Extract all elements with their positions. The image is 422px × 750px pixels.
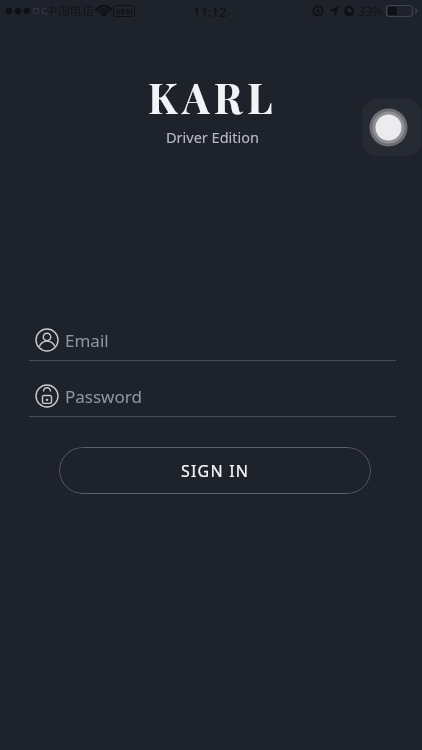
staticText: KARL bbox=[148, 70, 278, 125]
staticText: 11:12 bbox=[193, 3, 227, 21]
staticText: 33% bbox=[358, 3, 383, 20]
staticText: SIGN IN bbox=[181, 460, 250, 482]
button[interactable]: Password bbox=[28, 377, 396, 415]
button[interactable] bbox=[362, 99, 421, 156]
button[interactable]: Email bbox=[28, 321, 396, 359]
staticText: Email bbox=[65, 329, 109, 352]
staticText: Driver Edition bbox=[166, 127, 260, 147]
staticText: 中国电信 bbox=[46, 3, 94, 18]
button[interactable]: SIGN IN bbox=[59, 447, 371, 494]
staticText: VPN bbox=[116, 6, 133, 17]
staticText: Password bbox=[65, 385, 142, 408]
